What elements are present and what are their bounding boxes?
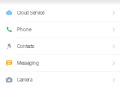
staticText: Messaging <box>17 60 39 66</box>
button[interactable]: Messaging <box>0 55 120 71</box>
button[interactable]: Phone <box>0 22 120 38</box>
staticText: Camera <box>17 77 32 83</box>
button[interactable]: Contacts <box>0 38 120 54</box>
staticText: Contacts <box>17 44 34 49</box>
button[interactable]: Camera <box>0 72 120 88</box>
staticText: Cloud Service <box>17 10 44 16</box>
staticText: Phone <box>17 27 31 32</box>
button[interactable]: Cloud Service <box>0 5 120 21</box>
